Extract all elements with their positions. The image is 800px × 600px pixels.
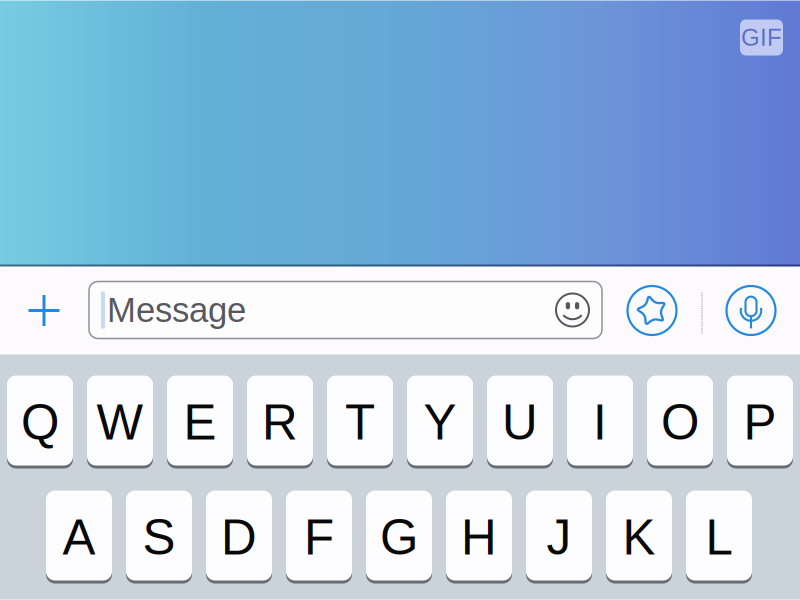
- staticText: F: [304, 510, 334, 565]
- button[interactable]: GIF: [740, 19, 783, 55]
- staticText: T: [345, 395, 375, 450]
- staticText: E: [183, 395, 216, 450]
- button[interactable]: U: [487, 375, 553, 465]
- button[interactable]: H: [446, 490, 512, 580]
- button[interactable]: Message: [89, 281, 602, 338]
- staticText: W: [96, 395, 143, 450]
- staticText: GIF: [741, 24, 782, 51]
- staticText: O: [661, 395, 699, 450]
- staticText: Y: [423, 395, 456, 450]
- button[interactable]: W: [87, 375, 153, 465]
- button[interactable]: Stickers: [625, 283, 679, 337]
- staticText: G: [380, 510, 418, 565]
- staticText: P: [743, 395, 776, 450]
- button[interactable]: S: [126, 490, 192, 580]
- staticText: Message: [107, 291, 246, 329]
- button[interactable]: G: [366, 490, 432, 580]
- button[interactable]: J: [526, 490, 592, 580]
- staticText: R: [262, 395, 298, 450]
- button[interactable]: Q: [7, 375, 73, 465]
- staticText: A: [62, 510, 95, 565]
- button[interactable]: Y: [407, 375, 473, 465]
- button[interactable]: Record audio message: [724, 283, 778, 337]
- button[interactable]: K: [606, 490, 672, 580]
- button[interactable]: F: [286, 490, 352, 580]
- staticText: U: [502, 395, 538, 450]
- button[interactable]: E: [167, 375, 233, 465]
- button[interactable]: P: [727, 375, 793, 465]
- button[interactable]: A: [46, 490, 112, 580]
- button[interactable]: L: [686, 490, 752, 580]
- staticText: K: [622, 510, 655, 565]
- button[interactable]: I: [567, 375, 633, 465]
- button[interactable]: Add attachment: [18, 284, 70, 336]
- staticText: S: [142, 510, 175, 565]
- button[interactable]: R: [247, 375, 313, 465]
- staticText: I: [593, 395, 607, 450]
- staticText: Q: [21, 395, 59, 450]
- staticText: L: [705, 510, 732, 565]
- staticText: D: [221, 510, 257, 565]
- staticText: J: [546, 510, 571, 565]
- staticText: H: [461, 510, 497, 565]
- button[interactable]: D: [206, 490, 272, 580]
- button[interactable]: T: [327, 375, 393, 465]
- button[interactable]: O: [647, 375, 713, 465]
